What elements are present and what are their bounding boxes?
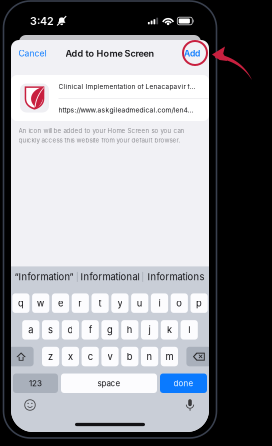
staticText: quickly access this website from your de… (19, 137, 181, 144)
staticText: x (68, 351, 73, 362)
staticText: 123 (29, 378, 42, 388)
button[interactable]: v (101, 347, 119, 366)
button[interactable]: l (181, 320, 198, 340)
button[interactable]: d (62, 320, 79, 340)
staticText: a (28, 324, 33, 335)
button[interactable]: c (82, 347, 99, 366)
staticText: https://www.askgileadmedical.com/len4... (58, 106, 193, 114)
button[interactable]: b (121, 347, 138, 366)
button[interactable]: Dictation (182, 397, 198, 413)
staticText: w (37, 297, 45, 309)
staticText: t (99, 297, 102, 309)
staticText: Add (184, 48, 200, 59)
button[interactable]: “Information” (11, 266, 77, 287)
button[interactable]: h (121, 320, 138, 340)
button[interactable]: w (32, 293, 49, 313)
staticText: r (78, 297, 82, 309)
staticText: f (89, 324, 92, 335)
button[interactable]: m (161, 347, 178, 366)
button[interactable]: u (131, 293, 148, 313)
staticText: Informational (80, 271, 139, 283)
button[interactable]: k (161, 320, 178, 340)
button[interactable]: n (141, 347, 158, 366)
staticText: space (97, 378, 120, 388)
staticText: Add to Home Screen (65, 48, 154, 59)
button[interactable]: s (42, 320, 59, 340)
button[interactable]: e (52, 293, 69, 313)
staticText: Cancel (19, 48, 47, 59)
button[interactable]: x (62, 347, 79, 366)
staticText: done (173, 378, 193, 388)
staticText: p (196, 297, 202, 309)
button[interactable]: Informations (143, 266, 209, 287)
button[interactable]: Delete (186, 347, 211, 366)
staticText: “Information” (14, 271, 73, 283)
button[interactable]: Emoji keyboard (22, 397, 38, 413)
staticText: q (18, 297, 24, 309)
staticText: k (167, 324, 172, 335)
button[interactable]: t (91, 293, 109, 313)
button[interactable]: z (42, 347, 59, 366)
staticText: c (88, 351, 93, 362)
button[interactable]: Shift (9, 347, 34, 366)
button[interactable]: q (12, 293, 29, 313)
staticText: e (58, 297, 63, 309)
button[interactable]: p (190, 293, 208, 313)
button[interactable]: o (171, 293, 188, 313)
button[interactable]: Cancel (19, 42, 47, 64)
button[interactable]: g (101, 320, 119, 340)
button[interactable]: Informational (77, 266, 142, 287)
staticText: d (67, 324, 73, 335)
button[interactable]: i (151, 293, 168, 313)
staticText: j (149, 324, 151, 335)
button[interactable]: y (111, 293, 128, 313)
staticText: Clinical Implementation of Lenacapavir f… (58, 83, 195, 91)
staticText: y (117, 297, 122, 309)
staticText: n (147, 351, 153, 362)
button[interactable]: done (160, 373, 207, 393)
staticText: i (158, 297, 160, 309)
button[interactable]: r (72, 293, 89, 313)
staticText: h (127, 324, 133, 335)
staticText: 3:42 (30, 14, 54, 27)
staticText: v (107, 351, 112, 362)
button[interactable]: j (141, 320, 158, 340)
staticText: z (48, 351, 53, 362)
staticText: s (48, 324, 53, 335)
staticText: b (127, 351, 133, 362)
staticText: m (165, 351, 173, 362)
staticText: l (188, 324, 190, 335)
button[interactable]: space (61, 373, 157, 393)
staticText: o (176, 297, 182, 309)
staticText: u (137, 297, 143, 309)
button[interactable]: f (82, 320, 99, 340)
staticText: Informations (148, 271, 205, 283)
button[interactable]: Add (184, 42, 200, 64)
button[interactable]: a (22, 320, 39, 340)
staticText: g (107, 324, 113, 335)
button[interactable]: 123 (13, 373, 58, 393)
staticText: An icon will be added to your Home Scree… (19, 127, 185, 134)
